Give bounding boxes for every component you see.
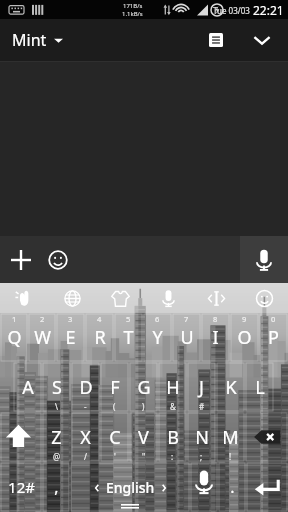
staticText: S (52, 375, 62, 400)
staticText: I (212, 325, 219, 350)
button[interactable]: 3 (56, 313, 85, 362)
staticText: 5 (126, 314, 131, 324)
button[interactable]: 4 (85, 313, 114, 362)
staticText: D (79, 375, 93, 400)
button[interactable]: Emoji (38, 240, 78, 280)
staticText: 9 (242, 314, 247, 324)
button[interactable]: 7 (172, 313, 201, 362)
staticText: 0 (271, 314, 276, 324)
staticText: R (94, 325, 106, 350)
button[interactable]: , (42, 462, 70, 512)
button[interactable]: 2 (28, 313, 56, 362)
button[interactable]: Shift (0, 412, 42, 462)
staticText: - (84, 401, 87, 412)
button[interactable]: H (158, 362, 187, 412)
staticText: O (237, 325, 252, 350)
staticText: X (80, 425, 91, 450)
staticText: F (110, 375, 120, 400)
staticText: V (138, 425, 149, 450)
button[interactable]: Language (48, 283, 96, 313)
button[interactable]: V (129, 412, 158, 462)
staticText: Q (7, 325, 22, 350)
button[interactable]: Collapse (244, 22, 280, 58)
staticText: ' (114, 451, 116, 462)
button[interactable]: M (216, 412, 245, 462)
staticText: C (109, 425, 121, 450)
button[interactable]: 8 (201, 313, 230, 362)
button[interactable]: Gesture typing (0, 283, 48, 313)
staticText: T (123, 325, 134, 350)
button[interactable]: Space, English (70, 462, 190, 512)
button[interactable]: D (71, 362, 100, 412)
staticText: B (167, 425, 179, 450)
staticText: Y (152, 325, 163, 350)
button[interactable]: Backspace (245, 412, 288, 462)
staticText: 3 (68, 314, 73, 324)
button[interactable]: F (100, 362, 129, 412)
button[interactable]: Enter (246, 462, 288, 512)
staticText: J (199, 375, 204, 400)
staticText: L (255, 375, 265, 400)
staticText: P (268, 325, 279, 350)
staticText: E (65, 325, 76, 350)
button[interactable]: C (100, 412, 129, 462)
staticText: Z (51, 425, 62, 450)
button[interactable]: 6 (143, 313, 172, 362)
button[interactable]: G (129, 362, 158, 412)
staticText: N (195, 425, 209, 450)
staticText: 1 (12, 314, 17, 324)
staticText: K (225, 375, 237, 400)
staticText: : (171, 451, 174, 462)
button[interactable]: Notes (198, 22, 234, 58)
staticText: 7 (184, 314, 189, 324)
staticText: Mint (12, 29, 47, 51)
staticText: English (106, 478, 155, 497)
button[interactable]: 9 (230, 313, 259, 362)
button[interactable]: 0 (259, 313, 288, 362)
staticText: 12# (8, 477, 35, 497)
staticText: Tue 03/03 (213, 5, 250, 16)
staticText: U (180, 325, 194, 350)
staticText: \ (55, 401, 58, 412)
staticText: , (54, 476, 59, 498)
button[interactable]: Add (1, 240, 41, 280)
button[interactable]: J (187, 362, 216, 412)
staticText: 2 (40, 314, 45, 324)
button[interactable]: Z (42, 412, 71, 462)
button[interactable]: 5 (114, 313, 143, 362)
button[interactable]: K (216, 362, 245, 412)
button[interactable]: Symbols (0, 462, 42, 512)
staticText: ! (229, 451, 232, 462)
staticText: H (166, 375, 180, 400)
button[interactable]: S (42, 362, 71, 412)
staticText: 1.1kB/s (122, 10, 143, 18)
button[interactable]: B (158, 412, 187, 462)
button[interactable]: Emoji (240, 283, 288, 313)
staticText: ; (200, 451, 203, 462)
staticText: # (199, 401, 205, 412)
button[interactable]: Cursor control (192, 283, 240, 313)
staticText: ) (142, 401, 145, 412)
staticText: & (170, 401, 176, 412)
staticText: 8 (213, 314, 218, 324)
staticText: ( (113, 401, 116, 412)
button[interactable]: A (13, 362, 42, 412)
staticText: 6 (155, 314, 160, 324)
staticText: W (34, 325, 51, 350)
button[interactable]: . (218, 462, 246, 512)
button[interactable]: Voice input (240, 236, 288, 283)
button[interactable]: Voice input (190, 462, 218, 512)
button[interactable]: N (187, 412, 216, 462)
button[interactable]: L (245, 362, 274, 412)
staticText: @ (53, 451, 61, 462)
staticText: . (230, 476, 235, 498)
button[interactable]: Voice input (144, 283, 192, 313)
staticText: A (22, 375, 34, 400)
button[interactable]: Mint (0, 23, 73, 57)
button[interactable]: 1 (0, 313, 28, 362)
button[interactable]: X (71, 412, 100, 462)
staticText: 4 (97, 314, 102, 324)
button[interactable]: Theme (96, 283, 144, 313)
staticText: / (84, 451, 87, 462)
staticText: 22:21 (253, 2, 284, 18)
